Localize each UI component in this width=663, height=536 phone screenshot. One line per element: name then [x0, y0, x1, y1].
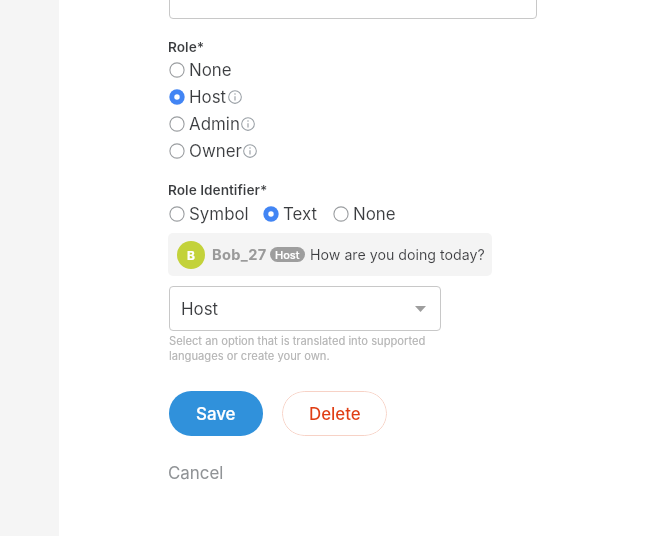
button[interactable]: Symbol: [169, 204, 249, 224]
staticText: Bob_27: [212, 246, 267, 264]
staticText: Host: [275, 248, 300, 261]
staticText: How are you doing today?: [310, 246, 485, 263]
staticText: Delete: [309, 404, 361, 424]
other: Open dropdown: [415, 306, 426, 312]
button[interactable]: None: [169, 56, 232, 83]
staticText: Host: [181, 299, 219, 319]
button[interactable]: Host: [169, 83, 242, 110]
button[interactable]: Save: [169, 391, 263, 436]
button[interactable]: None: [333, 204, 396, 224]
button[interactable]: Admin: [169, 110, 255, 137]
staticText: Host: [189, 87, 227, 107]
button[interactable]: Cancel: [168, 463, 224, 483]
staticText: languages or create your own.: [169, 349, 330, 363]
staticText: Select an option that is translated into…: [169, 334, 426, 348]
staticText: Role Identifier*: [168, 182, 268, 199]
button[interactable]: Text: [263, 204, 318, 224]
staticText: Admin: [189, 114, 240, 134]
button[interactable]: Delete: [282, 391, 387, 436]
staticText: None: [189, 60, 232, 80]
button[interactable]: Host: [169, 286, 441, 331]
staticText: Cancel: [168, 463, 224, 483]
staticText: None: [353, 204, 396, 224]
staticText: Save: [196, 404, 236, 424]
button[interactable]: Owner: [169, 137, 257, 164]
staticText: Owner: [189, 141, 242, 161]
staticText: Symbol: [189, 204, 249, 224]
staticText: Text: [283, 204, 318, 224]
staticText: Role*: [168, 39, 205, 56]
staticText: B: [187, 248, 195, 263]
